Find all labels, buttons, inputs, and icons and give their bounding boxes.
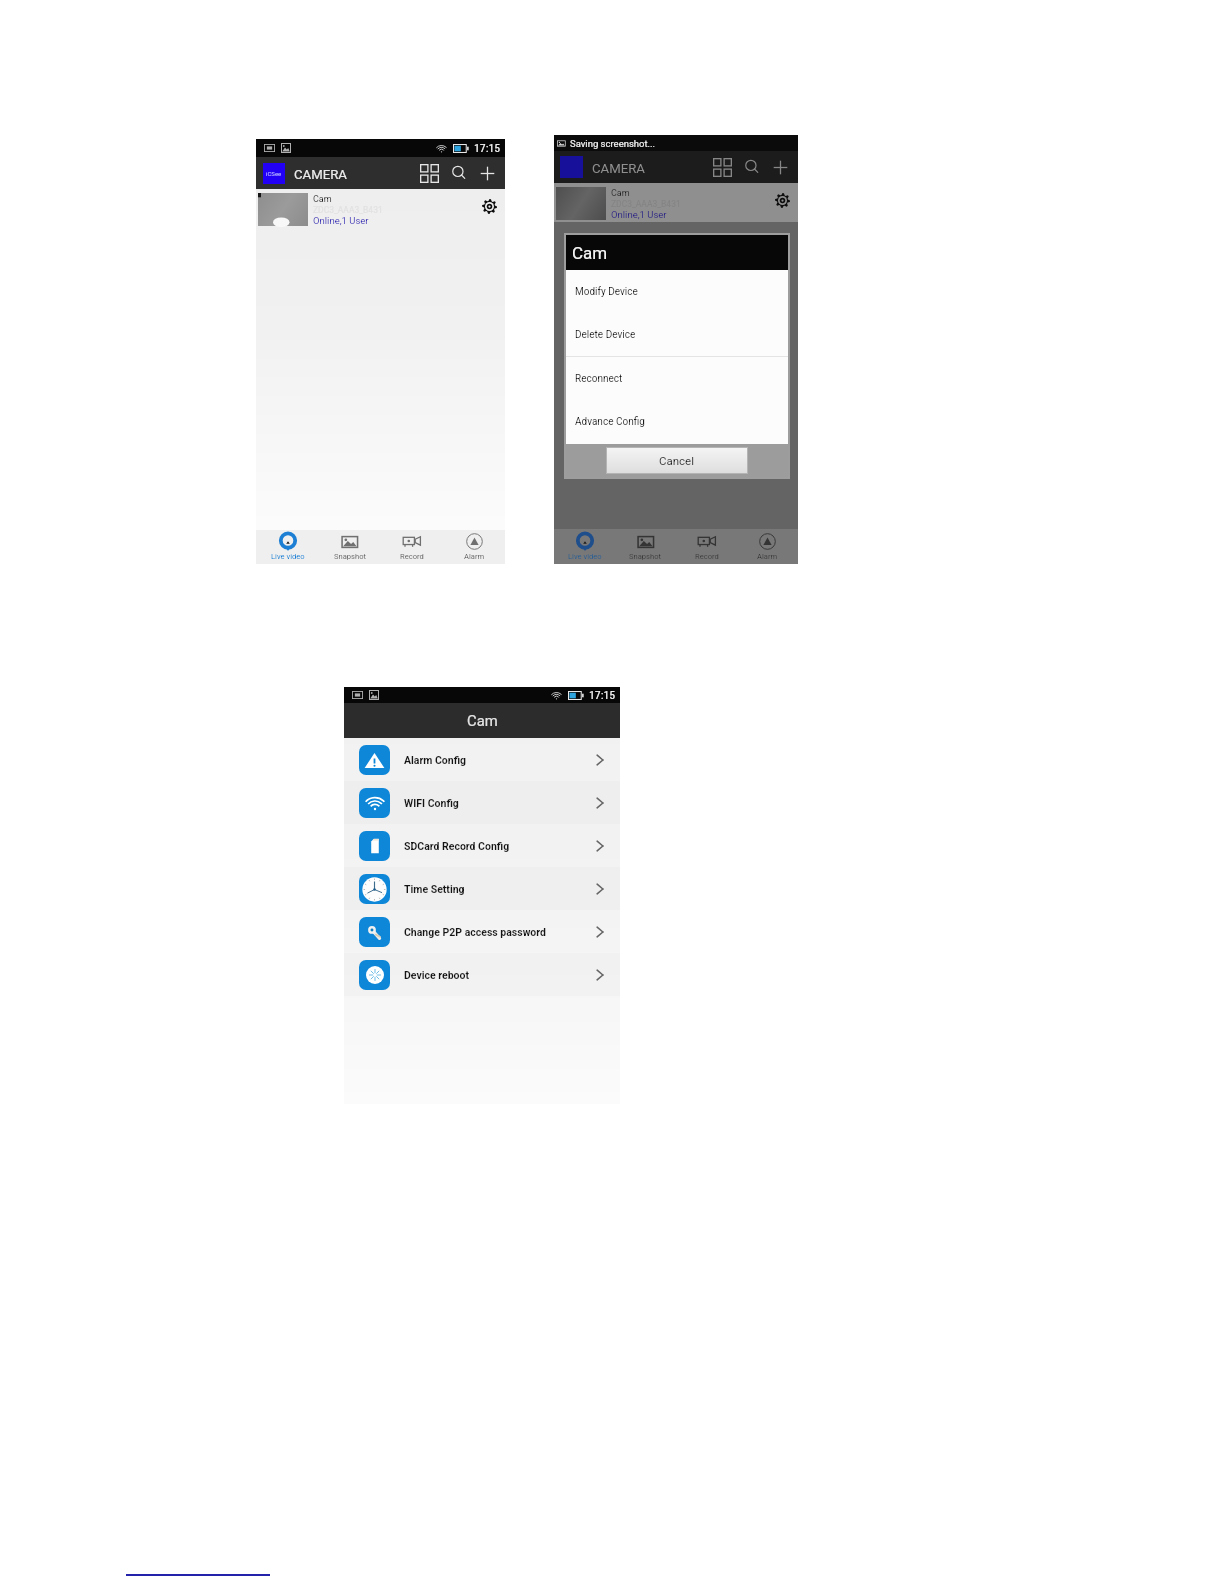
- button[interactable]: Device reboot: [344, 953, 620, 996]
- staticText: Cancel: [659, 454, 695, 467]
- staticText: Advance Config: [575, 416, 645, 428]
- staticText: SDCard Record Config: [404, 840, 510, 852]
- staticText: iCSee: [266, 170, 282, 177]
- button[interactable]: Cam: [554, 183, 798, 222]
- button[interactable]: Cam: [256, 189, 505, 228]
- staticText: Delete Device: [575, 329, 636, 341]
- button[interactable]: Change P2P access password: [344, 910, 620, 953]
- staticText: Cam: [611, 188, 630, 199]
- staticText: Reconnect: [575, 373, 623, 385]
- staticText: Cam: [467, 712, 498, 729]
- button[interactable]: Record: [381, 530, 443, 564]
- staticText: Change P2P access password: [404, 926, 546, 938]
- staticText: Snapshot: [334, 552, 367, 561]
- staticText: CAMERA: [294, 167, 347, 182]
- staticText: Time Setting: [404, 883, 465, 895]
- button[interactable]: Add device: [473, 157, 502, 189]
- button[interactable]: Alarm: [737, 529, 798, 564]
- staticText: Device reboot: [404, 969, 470, 981]
- staticText: WIFI Config: [404, 797, 459, 809]
- button[interactable]: Add device: [766, 151, 795, 183]
- staticText: 17:15: [474, 141, 501, 155]
- button[interactable]: WIFI Config: [344, 781, 620, 824]
- button[interactable]: Snapshot: [319, 530, 381, 564]
- button[interactable]: Live video: [256, 530, 319, 564]
- staticText: Live video: [568, 552, 602, 561]
- button[interactable]: Live video: [554, 529, 615, 564]
- staticText: ZDC3_AAA3_B431: [611, 199, 681, 209]
- button[interactable]: Snapshot: [615, 529, 676, 564]
- button[interactable]: Reconnect: [566, 357, 788, 400]
- staticText: Online,1 User: [611, 209, 667, 220]
- staticText: Live video: [271, 552, 305, 561]
- staticText: Cam: [572, 243, 608, 263]
- button[interactable]: Search: [737, 151, 766, 183]
- button[interactable]: Alarm: [443, 530, 505, 564]
- button[interactable]: Delete Device: [566, 313, 788, 356]
- staticText: Record: [400, 552, 424, 561]
- button[interactable]: Modify Device: [566, 270, 788, 313]
- staticText: Alarm: [757, 552, 778, 561]
- button[interactable]: Cancel: [607, 448, 747, 473]
- staticText: 17:15: [589, 688, 616, 702]
- button[interactable]: SDCard Record Config: [344, 824, 620, 867]
- staticText: Cam: [313, 194, 332, 205]
- button[interactable]: Time Setting: [344, 867, 620, 910]
- staticText: Alarm Config: [404, 754, 467, 766]
- staticText: Saving screenshot...: [570, 138, 656, 149]
- staticText: ZDC3_AAA3_B431: [313, 205, 383, 215]
- staticText: Snapshot: [629, 552, 662, 561]
- staticText: CAMERA: [592, 161, 645, 176]
- button[interactable]: Device settings: [768, 186, 796, 214]
- button[interactable]: Grid view: [708, 151, 737, 183]
- staticText: Alarm: [464, 552, 485, 561]
- button[interactable]: Alarm Config: [344, 738, 620, 781]
- staticText: Online,1 User: [313, 215, 369, 226]
- staticText: Record: [695, 552, 719, 561]
- staticText: Modify Device: [575, 286, 638, 298]
- button[interactable]: Record: [676, 529, 737, 564]
- button[interactable]: Advance Config: [566, 400, 788, 443]
- button[interactable]: Grid view: [415, 157, 444, 189]
- button[interactable]: Search: [444, 157, 473, 189]
- button[interactable]: Device settings: [475, 192, 503, 220]
